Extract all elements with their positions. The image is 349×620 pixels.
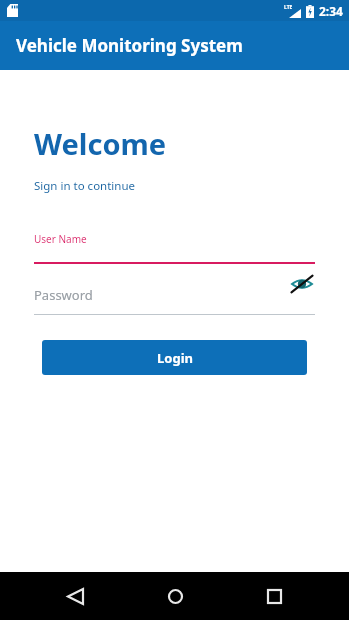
button[interactable]: Show password [289, 271, 315, 297]
staticText: LTE [284, 4, 293, 11]
button[interactable]: Home [151, 572, 199, 620]
button[interactable]: Password [34, 286, 315, 315]
button[interactable]: Back [51, 572, 99, 620]
button[interactable]: Recent apps [250, 572, 298, 620]
staticText: Welcome [34, 124, 167, 163]
staticText: Sign in to continue [34, 178, 136, 194]
staticText: Login [157, 349, 193, 367]
staticText: 2:34 [319, 3, 343, 19]
staticText: Password [34, 286, 93, 304]
staticText: Vehicle Monitoring System [16, 34, 243, 57]
staticText: User Name [34, 232, 87, 246]
button[interactable]: Login [42, 340, 307, 375]
button[interactable]: User Name [34, 232, 315, 264]
